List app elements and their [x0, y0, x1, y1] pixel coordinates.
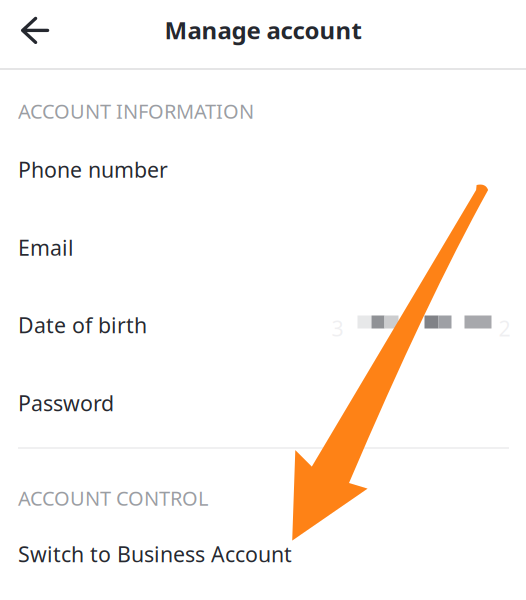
button[interactable]: Date of birth — [0, 294, 526, 356]
staticText: ACCOUNT INFORMATION — [18, 98, 254, 124]
staticText: ACCOUNT CONTROL — [18, 485, 208, 511]
staticText: 3 — [331, 314, 343, 342]
staticText: Manage account — [164, 14, 361, 46]
staticText: Password — [18, 389, 114, 417]
button[interactable]: Phone number — [0, 138, 526, 200]
button[interactable]: Password — [0, 372, 526, 434]
staticText: Email — [18, 233, 74, 262]
button[interactable]: Email — [0, 216, 526, 278]
staticText: Date of birth — [18, 311, 147, 339]
staticText: Switch to Business Account — [18, 540, 292, 568]
staticText: Phone number — [18, 155, 168, 184]
staticText: 2 — [498, 314, 510, 342]
button[interactable]: Switch to Business Account — [0, 523, 526, 585]
button[interactable]: Back — [0, 0, 64, 62]
